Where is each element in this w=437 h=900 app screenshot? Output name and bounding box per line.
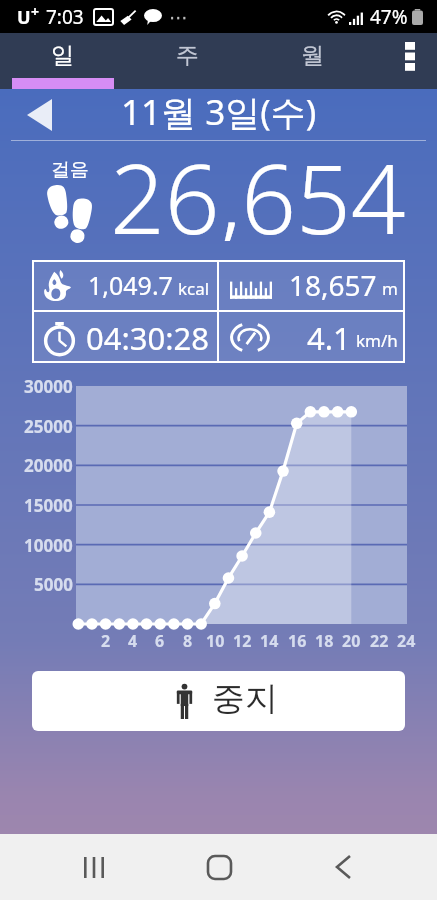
staticText: 47% [370, 4, 408, 30]
staticText: 걸음 [51, 158, 89, 182]
staticText: 16 [288, 630, 307, 652]
button[interactable]: 일 [0, 33, 125, 89]
staticText: m [382, 277, 398, 300]
staticText: 11월 3일(수) [121, 88, 317, 136]
staticText: 6 [155, 630, 165, 652]
staticText: 12 [233, 630, 252, 652]
staticText: 중지 [212, 678, 278, 720]
staticText: 04:30:28 [86, 317, 210, 359]
staticText: 26,654 [110, 131, 406, 241]
button[interactable]: 주 [125, 33, 250, 89]
staticText: 5000 [34, 573, 73, 596]
staticText: + [31, 2, 40, 21]
button[interactable]: Previous day [16, 92, 62, 138]
staticText: 14 [260, 630, 279, 652]
button[interactable]: Back [312, 836, 374, 898]
staticText: 1,049.7 [88, 268, 173, 302]
staticText: 15000 [24, 494, 73, 517]
staticText: 22 [370, 630, 389, 652]
staticText: 2 [101, 630, 111, 652]
staticText: 8 [183, 630, 193, 652]
staticText: U [17, 5, 31, 30]
staticText: 24 [397, 630, 416, 652]
staticText: 일 [51, 41, 74, 70]
staticText: 20000 [24, 454, 73, 477]
staticText: km/h [356, 329, 398, 352]
staticText: 월 [301, 41, 324, 70]
staticText: 7:03 [46, 4, 84, 30]
button[interactable]: 중지 [32, 671, 405, 731]
staticText: 20 [342, 630, 361, 652]
staticText: 18,657 [289, 266, 377, 304]
staticText: 10 [206, 630, 225, 652]
staticText: ⋯ [169, 6, 188, 28]
staticText: 10000 [24, 534, 73, 557]
staticText: 4.1 [307, 317, 351, 359]
staticText: 18 [315, 630, 334, 652]
button[interactable]: Recent apps [63, 836, 125, 898]
staticText: 4 [128, 630, 138, 652]
staticText: kcal [178, 277, 210, 300]
button[interactable]: 월 [250, 33, 375, 89]
button[interactable]: Home [188, 836, 250, 898]
staticText: 30000 [24, 375, 73, 398]
staticText: 주 [176, 41, 199, 70]
button[interactable]: More options [375, 33, 437, 89]
staticText: 25000 [24, 415, 73, 438]
